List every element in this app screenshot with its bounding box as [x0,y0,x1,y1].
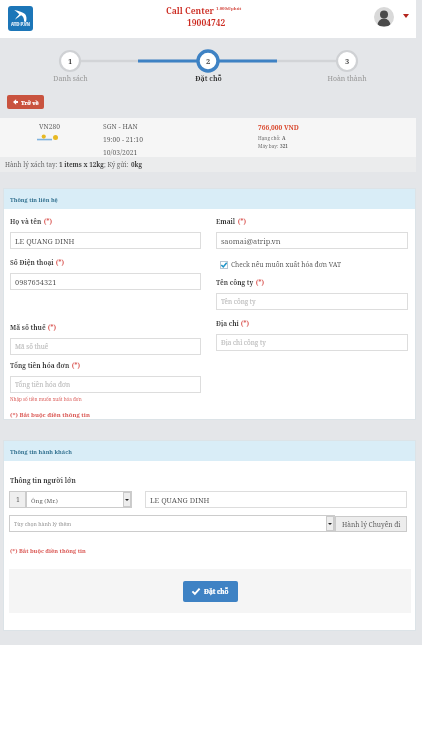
button[interactable]: Đặt chỗ [183,581,238,602]
button[interactable]: Tổng tiền hóa đơn [10,376,201,393]
button[interactable]: Account [374,7,394,27]
button[interactable]: 0987654321 [10,273,201,290]
staticText: SGN - HAN [103,122,138,131]
staticText: Danh sách [53,74,88,83]
staticText: 1 [16,495,20,504]
button[interactable]: LE QUANG DINH [10,232,201,249]
staticText: Ông (Mr.) [31,496,58,504]
staticText: (*) [42,217,53,226]
staticText: Hành lý xách tay: [5,160,59,169]
button[interactable]: saomai@atrip.vn [216,232,408,249]
staticText: 10/03/2021 [103,148,138,157]
staticText: Call Center [166,5,214,17]
staticText: (*) [70,361,81,370]
staticText: Tùy chọn hành lý thêm [14,520,72,527]
staticText: Hạng chỗ: [258,135,282,141]
button[interactable]: Trở về [7,95,44,109]
button[interactable]: Ông (Mr.) [26,491,132,508]
staticText: Thông tin hành khách [10,448,72,456]
button[interactable]: LE QUANG DINH [145,491,407,508]
staticText: Thông tin người lớn [10,476,76,485]
staticText: 19:00 - 21:10 [103,135,143,144]
staticText: Email [216,217,236,226]
button[interactable]: Step 1 [60,51,80,71]
staticText: ; Ký gửi: [104,160,131,169]
staticText: LE QUANG DINH [150,495,210,505]
staticText: Tổng tiền hóa đơn [10,361,70,370]
staticText: LE QUANG DINH [15,236,75,246]
button[interactable]: Hành lý Chuyến đi [335,516,407,532]
staticText: Địa chỉ [216,319,239,328]
staticText: ATD P.VN [11,21,31,27]
button[interactable]: ATD P.VN home [8,6,33,31]
staticText: saomai@atrip.vn [221,236,281,246]
staticText: Tổng tiền hóa đơn [15,380,71,389]
staticText: Họ và tên [10,217,42,226]
button[interactable]: Tùy chọn hành lý thêm [9,515,335,532]
button[interactable]: Account menu [403,14,409,18]
staticText: VN280 [39,122,61,131]
staticText: 1 [68,56,73,66]
staticText: Máy bay: [258,143,280,149]
staticText: Hoàn thành [327,74,367,83]
staticText: (*) Bắt buộc điền thông tin [10,547,86,555]
staticText: Địa chỉ công ty [221,338,266,347]
staticText: 1 items x 12kg [59,160,104,169]
staticText: (*) [239,319,250,328]
button[interactable]: Tên công ty [216,293,408,310]
staticText: A [282,135,286,141]
button[interactable]: Step 2 [198,51,218,71]
staticText: Mã số thuế [15,342,49,351]
staticText: Nhập số tiền muốn xuất hóa đơn [10,396,82,402]
button[interactable]: Step 3 [337,51,357,71]
staticText: 1.000đ/phút [216,5,242,11]
staticText: (*) Bắt buộc điền thông tin [10,411,90,419]
staticText: (*) [46,323,57,332]
staticText: 0987654321 [15,277,57,287]
staticText: Tên công ty [221,297,256,306]
staticText: Đặt chỗ [204,587,229,596]
staticText: Thông tin liên hệ [10,196,58,204]
staticText: Tên công ty [216,278,254,287]
staticText: Check nếu muốn xuất hóa đơn VAT [231,260,341,269]
button[interactable]: Địa chỉ công ty [216,334,408,351]
staticText: 766,000 VND [258,123,299,132]
staticText: Trở về [21,99,39,106]
staticText: Đặt chỗ [195,74,222,83]
button[interactable]: Check nếu muốn xuất hóa đơn VAT [220,260,341,269]
staticText: (*) [254,278,265,287]
staticText: 2 [206,56,211,66]
staticText: (*) [54,258,65,267]
staticText: 0kg [131,160,142,169]
staticText: (*) [236,217,247,226]
staticText: 3 [345,56,350,66]
staticText: 321 [280,143,288,149]
button[interactable]: Mã số thuế [10,338,201,355]
staticText: 19004742 [187,17,226,29]
staticText: Mã số thuế [10,323,46,332]
staticText: Số Điện thoại [10,258,54,267]
staticText: Hành lý Chuyến đi [342,520,401,529]
